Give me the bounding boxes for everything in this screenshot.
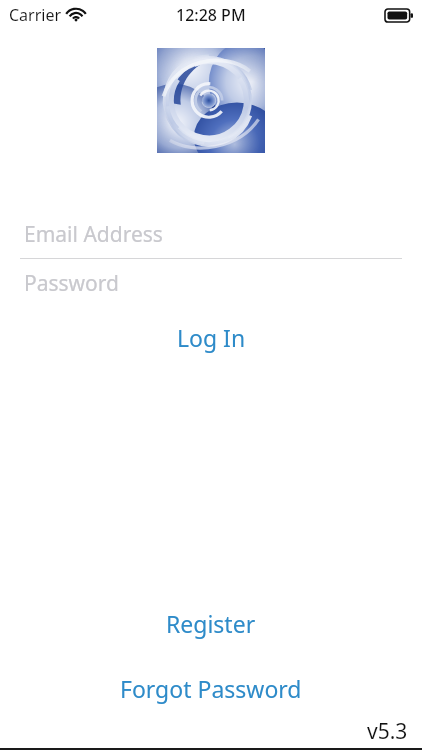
staticText: Password [24,269,119,298]
staticText: Forgot Password [120,673,302,704]
staticText: Email Address [24,220,163,249]
button[interactable]: Forgot Password [0,666,422,710]
button[interactable]: Log In [0,315,422,359]
button[interactable]: Register [0,601,422,645]
staticText: 12:28 PM [176,4,246,26]
other: App logo [157,48,265,153]
other: Battery full [385,9,413,22]
staticText: Carrier [9,4,62,26]
button[interactable]: Email Address [0,210,422,258]
staticText: Log In [177,322,246,353]
button[interactable]: Password [0,259,422,307]
staticText: v5.3 [367,717,408,746]
staticText: Register [166,608,256,639]
